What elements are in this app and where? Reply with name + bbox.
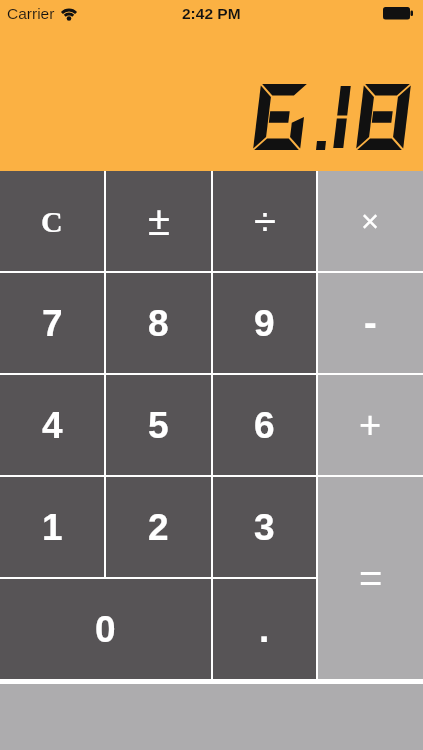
button[interactable]: 6 — [213, 375, 316, 475]
staticText: . — [259, 609, 270, 650]
button[interactable]: . — [213, 579, 316, 679]
button[interactable]: 9 — [213, 273, 316, 373]
button[interactable]: + — [318, 375, 423, 475]
staticText: 9 — [254, 303, 275, 344]
staticText: = — [359, 556, 383, 601]
staticText: 5 — [148, 405, 169, 446]
staticText: + — [359, 404, 382, 446]
staticText: 2:42 PM — [182, 5, 241, 22]
staticText: 8 — [148, 303, 169, 344]
staticText: 7 — [42, 303, 63, 344]
staticText: - — [364, 302, 377, 344]
button[interactable]: 3 — [213, 477, 316, 577]
button[interactable]: 7 — [0, 273, 104, 373]
button[interactable]: - — [318, 273, 423, 373]
staticText: 6 — [254, 405, 275, 446]
staticText: × — [361, 204, 380, 239]
button[interactable]: 8 — [106, 273, 211, 373]
button[interactable]: × — [318, 171, 423, 271]
button[interactable]: C — [0, 171, 104, 271]
staticText: ÷ — [254, 199, 276, 244]
button[interactable]: 2 — [106, 477, 211, 577]
button[interactable]: = — [318, 477, 423, 679]
staticText: 0 — [95, 609, 116, 650]
staticText: 2 — [148, 507, 169, 548]
button[interactable]: ± — [106, 171, 211, 271]
button[interactable]: 4 — [0, 375, 104, 475]
staticText: ± — [148, 199, 170, 244]
staticText: 3 — [254, 507, 275, 548]
button[interactable]: ÷ — [213, 171, 316, 271]
staticText: 4 — [42, 405, 63, 446]
staticText: Carrier — [7, 5, 55, 22]
button[interactable]: 5 — [106, 375, 211, 475]
button[interactable]: 1 — [0, 477, 104, 577]
button[interactable]: 0 — [0, 579, 211, 679]
staticText: 1 — [42, 507, 63, 548]
staticText: C — [41, 205, 63, 238]
